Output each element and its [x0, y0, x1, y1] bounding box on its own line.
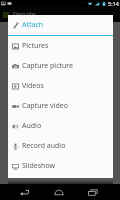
button[interactable]: Pictures	[8, 36, 113, 56]
staticText: Denote	[13, 10, 36, 19]
staticText: Attach	[22, 20, 44, 30]
button[interactable]: Slideshow	[8, 156, 113, 176]
staticText: 5:14	[108, 0, 119, 7]
button[interactable]: Recent apps	[82, 185, 103, 200]
button[interactable]: Capture picture	[8, 56, 113, 76]
staticText: Record audio	[22, 141, 66, 151]
staticText: Slideshow	[22, 161, 55, 171]
button[interactable]: Videos	[8, 76, 113, 96]
button[interactable]: Home	[48, 185, 69, 200]
button[interactable]: Back	[14, 185, 35, 200]
button[interactable]: Audio	[8, 116, 113, 136]
button[interactable]: Record audio	[8, 136, 113, 156]
staticText: Capture video	[22, 101, 68, 111]
staticText: Capture picture	[22, 61, 74, 71]
staticText: Pictures	[22, 41, 49, 51]
staticText: Videos	[22, 81, 44, 91]
staticText: Audio	[22, 121, 42, 131]
button[interactable]: Capture video	[8, 96, 113, 116]
